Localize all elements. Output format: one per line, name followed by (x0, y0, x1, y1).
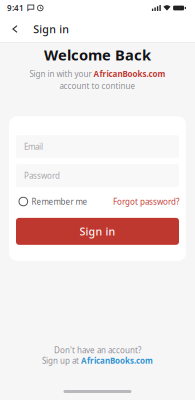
button[interactable]: Forgot password? (113, 196, 179, 207)
staticText: Don't have an account? (54, 345, 141, 355)
staticText: Password (24, 170, 60, 181)
button[interactable]: Back (0, 16, 26, 42)
button[interactable]: Email (16, 135, 179, 158)
button[interactable]: Sign in (16, 218, 179, 245)
staticText: AfricanBooks.com (93, 68, 165, 79)
staticText: AfricanBooks.com (81, 355, 153, 366)
staticText: Sign in with your (29, 68, 93, 79)
button[interactable]: Remember me (19, 196, 88, 207)
staticText: account to continue (59, 81, 135, 91)
staticText: Remember me (32, 196, 88, 207)
staticText: Sign in (33, 22, 69, 36)
button[interactable]: Password (16, 164, 179, 187)
staticText: Sign up at (42, 355, 81, 366)
staticText: 9:41 (7, 3, 24, 13)
staticText: Email (24, 141, 43, 152)
staticText: Welcome Back (44, 45, 151, 64)
staticText: Sign in (79, 224, 115, 238)
staticText: Forgot password? (113, 196, 179, 207)
button[interactable]: Sign up at (42, 355, 153, 366)
